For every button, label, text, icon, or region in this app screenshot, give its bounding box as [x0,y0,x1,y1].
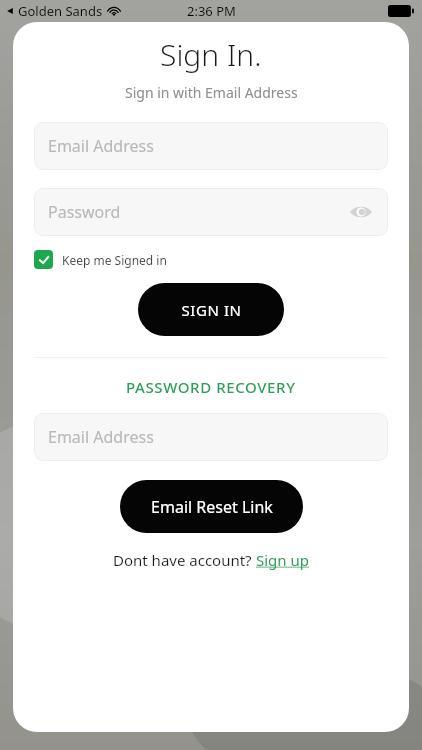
staticText: Email Address [48,426,154,448]
staticText: Sign In. [160,34,262,75]
staticText: Email Reset Link [151,496,273,518]
button[interactable]: Sign up [256,550,309,570]
staticText: Sign up [256,550,309,570]
button[interactable]: Password [34,188,388,236]
staticText: Golden Sands [18,2,103,20]
staticText: Sign in with Email Address [125,83,298,102]
button[interactable]: Email Address [34,122,388,170]
button[interactable]: Email Address [34,413,388,461]
staticText: 2:36 PM [187,2,236,20]
button[interactable]: Keep me signed in [34,250,388,269]
staticText: Keep me Signed in [62,252,167,268]
staticText: PASSWORD RECOVERY [126,377,296,397]
staticText: Dont have account? [113,550,256,570]
other: Keep me signed in [34,250,53,269]
button[interactable]: Email Reset Link [120,480,303,533]
button[interactable]: SIGN IN [138,283,284,336]
button[interactable]: Show password [346,197,376,227]
staticText: Email Address [48,135,154,157]
staticText: Password [48,201,121,223]
staticText: SIGN IN [181,300,242,320]
